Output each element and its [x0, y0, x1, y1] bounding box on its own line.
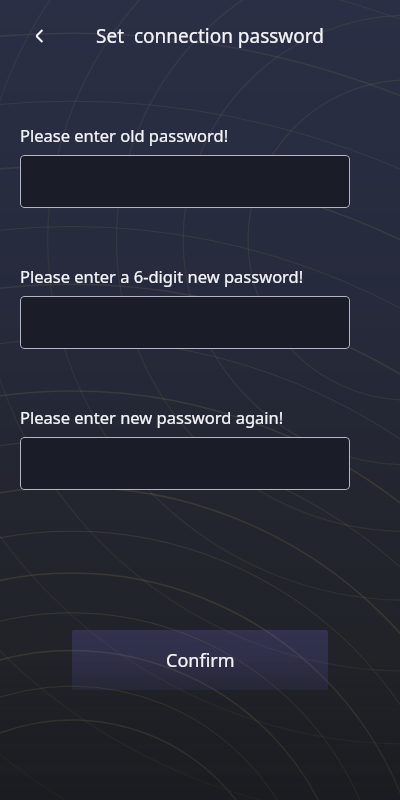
staticText: Confirm	[166, 648, 235, 673]
button[interactable]	[20, 155, 350, 208]
staticText: Please enter old password!	[20, 124, 229, 146]
button[interactable]	[20, 437, 350, 490]
button[interactable]: Confirm	[72, 630, 328, 690]
staticText: Set connection password	[96, 23, 324, 49]
button[interactable]	[20, 296, 350, 349]
staticText: Please enter a 6-digit new password!	[20, 265, 304, 287]
staticText: Please enter new password again!	[20, 406, 284, 428]
button[interactable]: Back	[20, 16, 60, 56]
